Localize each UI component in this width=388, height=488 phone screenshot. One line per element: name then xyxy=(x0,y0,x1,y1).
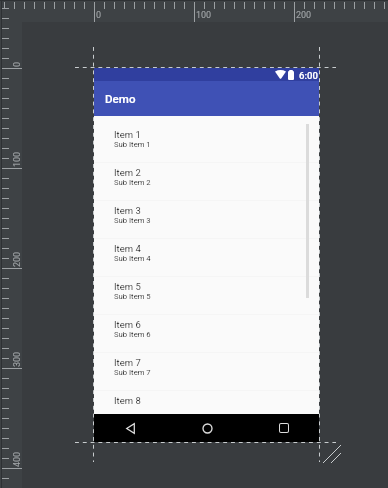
staticText: 400 xyxy=(12,451,23,467)
staticText: Item 5 xyxy=(114,281,141,292)
button[interactable]: Item 1 xyxy=(94,125,319,163)
staticText: 6:00 xyxy=(299,70,318,81)
staticText: 300 xyxy=(12,351,23,367)
button[interactable]: Home xyxy=(177,414,237,442)
staticText: Sub Item 1 xyxy=(114,140,151,149)
staticText: Demo xyxy=(105,92,136,106)
staticText: Sub Item 4 xyxy=(114,254,151,263)
staticText: Item 3 xyxy=(114,205,141,216)
button[interactable]: Item 2 xyxy=(94,163,319,201)
staticText: 100 xyxy=(12,151,23,167)
button[interactable]: Recent apps xyxy=(254,414,314,442)
staticText: Item 8 xyxy=(114,395,141,406)
button[interactable]: Item 5 xyxy=(94,277,319,315)
staticText: 200 xyxy=(296,10,312,21)
staticText: 0 xyxy=(96,10,102,21)
staticText: Sub Item 6 xyxy=(114,330,151,339)
staticText: Item 4 xyxy=(114,243,141,254)
staticText: Item 2 xyxy=(114,167,141,178)
button[interactable]: Item 6 xyxy=(94,315,319,353)
button[interactable]: Item 7 xyxy=(94,353,319,391)
staticText: Sub Item 3 xyxy=(114,216,151,225)
button[interactable]: Back xyxy=(100,414,160,442)
button[interactable]: Item 4 xyxy=(94,239,319,277)
staticText: 0 xyxy=(12,61,23,67)
staticText: Sub Item 7 xyxy=(114,368,151,377)
button[interactable]: Item 8 xyxy=(94,391,319,415)
button[interactable]: Item 3 xyxy=(94,201,319,239)
button[interactable]: Demo xyxy=(94,81,319,116)
staticText: 200 xyxy=(12,251,23,267)
staticText: 100 xyxy=(196,10,212,21)
staticText: Item 1 xyxy=(114,129,141,140)
staticText: Sub Item 2 xyxy=(114,178,151,187)
staticText: Sub Item 5 xyxy=(114,292,151,301)
staticText: Item 6 xyxy=(114,319,141,330)
staticText: Item 7 xyxy=(114,357,141,368)
